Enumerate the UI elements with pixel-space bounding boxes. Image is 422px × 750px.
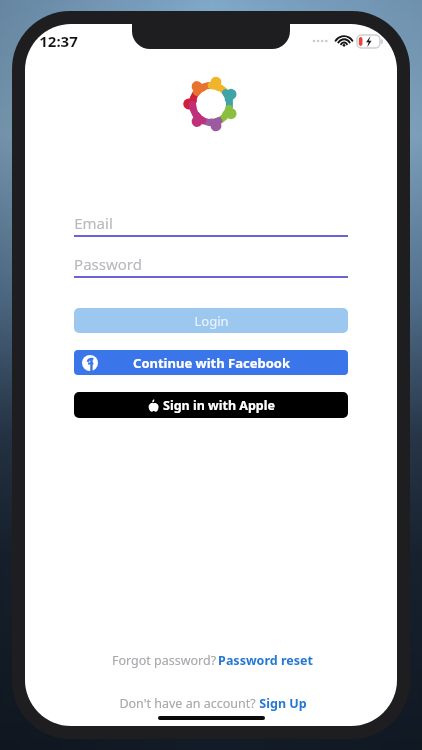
button[interactable]: Login [74,308,348,333]
button[interactable]: Forgot password? [25,652,397,669]
staticText: 12:37 [39,31,78,51]
staticText: Login [194,312,229,330]
button[interactable]: Continue with Facebook [74,350,348,375]
other: Battery charging [357,35,383,48]
staticText: Forgot password? [110,652,218,669]
button[interactable]: Apple [74,392,348,418]
staticText: Sign Up [259,695,307,712]
other: App logo [180,73,242,135]
button[interactable]: Password [74,252,348,278]
staticText: Don't have an account? [116,695,259,712]
other: Apple [148,399,159,412]
other: Wi-Fi [336,35,352,47]
staticText: Password reset [218,652,313,669]
staticText: Continue with Facebook [133,354,290,372]
staticText: Sign in with Apple [163,397,275,414]
staticText: Password [74,254,142,274]
button[interactable]: Email [74,211,348,237]
button[interactable]: Don't have an account? [25,695,397,712]
other: Facebook [82,355,98,371]
staticText: Email [74,213,113,233]
